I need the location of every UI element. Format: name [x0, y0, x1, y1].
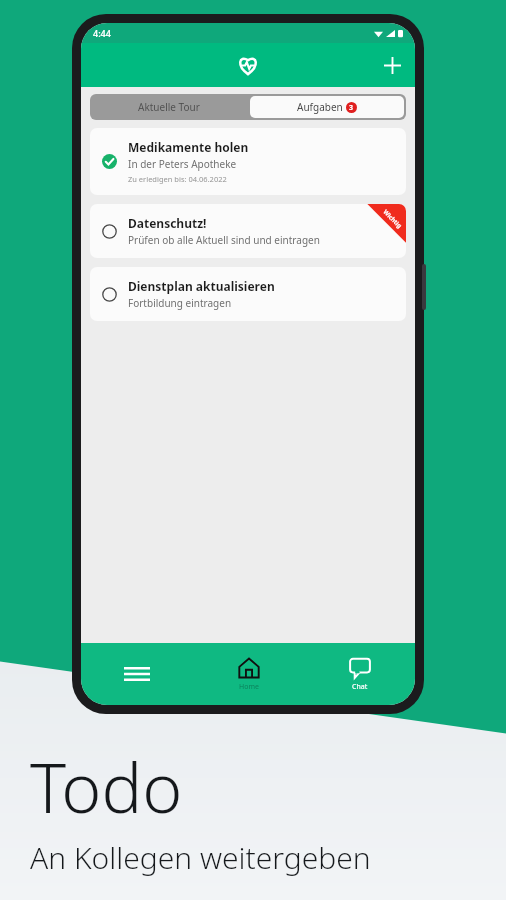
staticText: Zu erledigen bis: 04.06.2022	[128, 174, 227, 184]
button[interactable]: Medikamente holen	[90, 128, 406, 195]
staticText: Medikamente holen	[128, 139, 249, 155]
staticText: Dienstplan aktualisieren	[128, 278, 275, 294]
button[interactable]: Add	[375, 48, 409, 82]
other: Logo	[236, 53, 260, 77]
button[interactable]: Datenschutz!	[90, 204, 406, 258]
staticText: Home	[239, 682, 259, 692]
staticText: Datenschutz!	[128, 215, 207, 231]
staticText: Todo	[30, 740, 183, 833]
staticText: Fortbildung eintragen	[128, 296, 232, 310]
staticText: An Kollegen weitergeben	[30, 837, 371, 878]
button[interactable]: Chat	[304, 643, 415, 705]
staticText: Prüfen ob alle Aktuell sind und eintrage…	[128, 233, 320, 247]
button[interactable]: Dienstplan aktualisieren	[90, 267, 406, 321]
staticText: In der Peters Apotheke	[128, 157, 237, 171]
staticText: 4:44	[93, 27, 111, 39]
staticText: Chat	[352, 682, 368, 692]
staticText: 3	[349, 103, 354, 113]
staticText: Wichtig	[381, 208, 403, 230]
staticText: Aufgaben	[297, 100, 343, 114]
staticText: Aktuelle Tour	[138, 100, 200, 114]
button[interactable]: Menu	[81, 643, 193, 705]
button[interactable]: Home	[193, 643, 304, 705]
button[interactable]: Aktuelle Tour	[90, 94, 248, 120]
button[interactable]: Aufgaben	[250, 96, 404, 118]
